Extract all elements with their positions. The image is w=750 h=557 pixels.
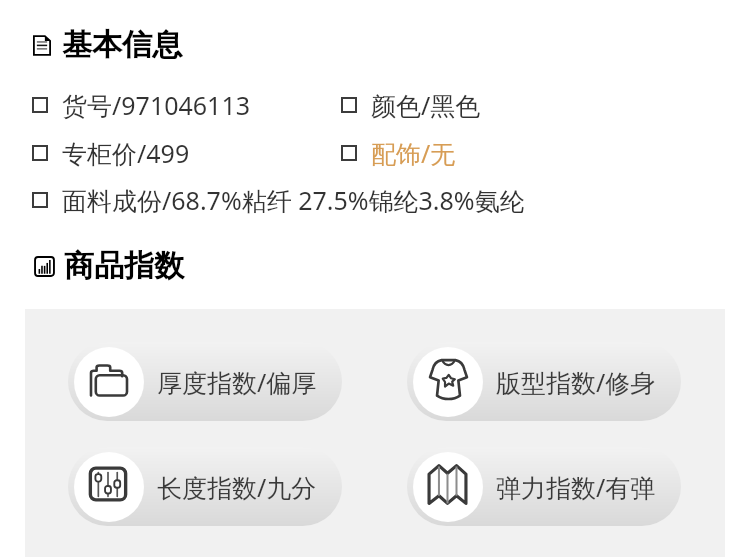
button[interactable]: 面料成份/68.7%粘纤 27.5%锦纶3.8%氨纶 xyxy=(32,183,525,217)
staticText: 专柜价/499 xyxy=(62,136,190,170)
button[interactable]: 专柜价/499 xyxy=(32,136,190,170)
button[interactable]: 货号/971046113 xyxy=(32,88,251,122)
button[interactable]: 弹力指数/有弹 xyxy=(407,447,681,526)
staticText: 商品指数 xyxy=(64,247,184,285)
button[interactable]: 版型指数/修身 xyxy=(407,342,681,421)
other: 商品指数 xyxy=(34,256,55,277)
button[interactable]: 颜色/黑色 xyxy=(341,88,481,122)
other: 基本信息 xyxy=(33,35,51,56)
staticText: 弹力指数/有弹 xyxy=(496,470,656,504)
button[interactable]: 厚度指数/偏厚 xyxy=(68,342,342,421)
staticText: 版型指数/修身 xyxy=(496,365,656,399)
staticText: 厚度指数/偏厚 xyxy=(157,365,317,399)
button[interactable]: 配饰/无 xyxy=(341,136,456,170)
button[interactable]: 基本信息 xyxy=(33,26,182,64)
staticText: 面料成份/68.7%粘纤 27.5%锦纶3.8%氨纶 xyxy=(62,183,525,217)
staticText: 长度指数/九分 xyxy=(157,470,317,504)
staticText: 基本信息 xyxy=(62,26,182,64)
staticText: 颜色/黑色 xyxy=(371,88,481,122)
staticText: 配饰/无 xyxy=(371,136,456,170)
staticText: 货号/971046113 xyxy=(62,88,251,122)
button[interactable]: 长度指数/九分 xyxy=(68,447,342,526)
button[interactable]: 商品指数 xyxy=(34,247,184,285)
